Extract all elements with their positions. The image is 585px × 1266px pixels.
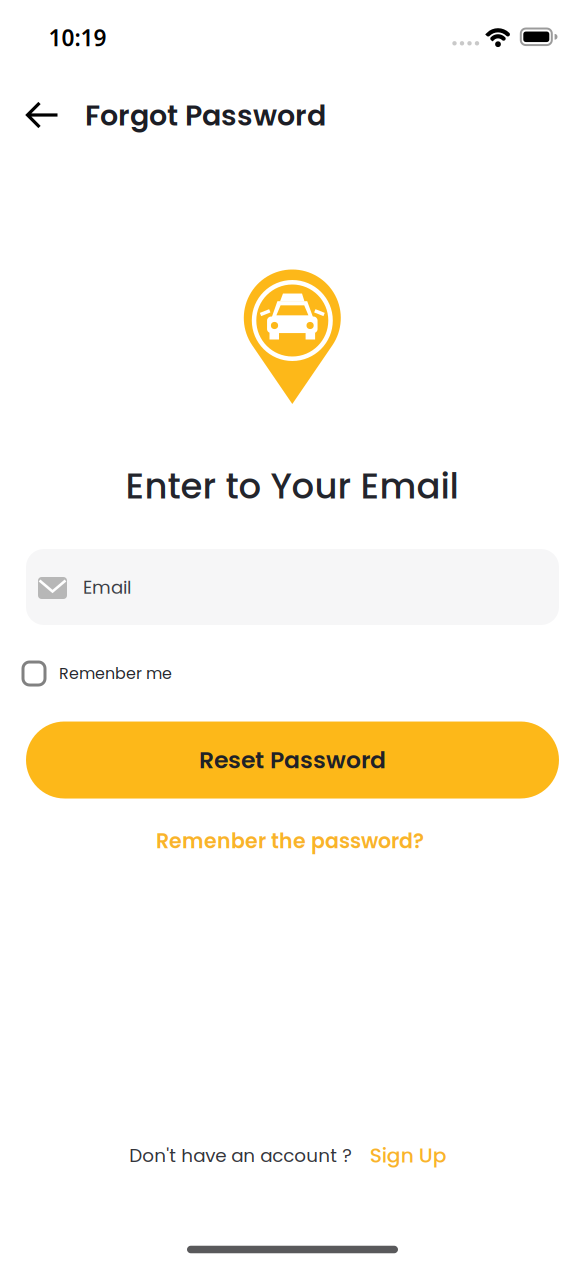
button[interactable]: Remenber me (0, 0, 585, 1266)
staticText: Enter to Your Email (125, 461, 458, 511)
button[interactable]: Back (0, 0, 585, 1266)
staticText: Reset Password (199, 744, 386, 776)
button[interactable]: Reset Password (0, 0, 585, 1266)
button[interactable]: Email (0, 0, 585, 1266)
staticText: 10:19 (48, 22, 106, 52)
staticText: Sign Up (370, 1141, 447, 1170)
staticText: Email (83, 575, 131, 600)
staticText: Remenber the password? (156, 827, 424, 855)
staticText: Don't have an account ? (129, 1143, 352, 1168)
button[interactable]: Sign Up (370, 1141, 447, 1170)
staticText: Remenber me (59, 662, 172, 685)
button[interactable]: Remenber the password? (0, 0, 585, 1266)
staticText: Forgot Password (85, 95, 326, 135)
